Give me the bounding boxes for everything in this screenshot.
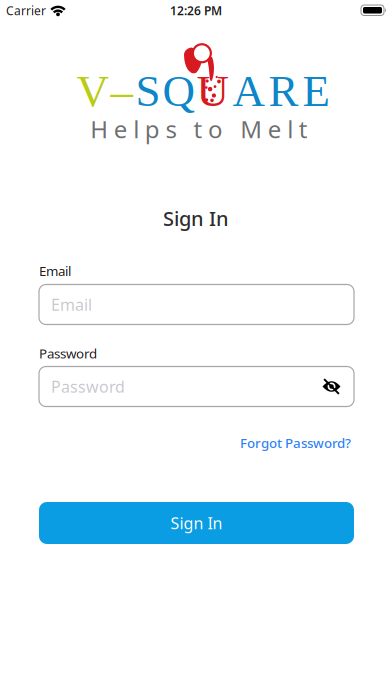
- staticText: –: [110, 66, 133, 116]
- staticText: Password: [39, 344, 97, 362]
- staticText: Sign In: [170, 512, 222, 534]
- staticText: Email: [51, 294, 92, 315]
- staticText: E: [302, 66, 329, 116]
- staticText: Sign In: [163, 205, 229, 232]
- staticText: Q: [162, 66, 194, 116]
- staticText: 12:26 PM: [170, 2, 222, 18]
- staticText: R: [268, 66, 298, 116]
- button[interactable]: Forgot Password?: [240, 434, 351, 452]
- staticText: A: [232, 66, 264, 116]
- button[interactable]: Password: [39, 366, 354, 406]
- button[interactable]: [322, 377, 341, 396]
- staticText: S: [135, 66, 160, 116]
- staticText: Password: [51, 376, 125, 397]
- staticText: Email: [39, 262, 71, 280]
- staticText: Forgot Password?: [240, 434, 351, 452]
- staticText: Carrier: [6, 2, 46, 18]
- button[interactable]: Email: [39, 284, 354, 324]
- button[interactable]: Sign In: [39, 502, 354, 544]
- staticText: Helps to Melt: [90, 113, 308, 145]
- staticText: V: [76, 66, 108, 116]
- staticText: U: [196, 66, 228, 116]
